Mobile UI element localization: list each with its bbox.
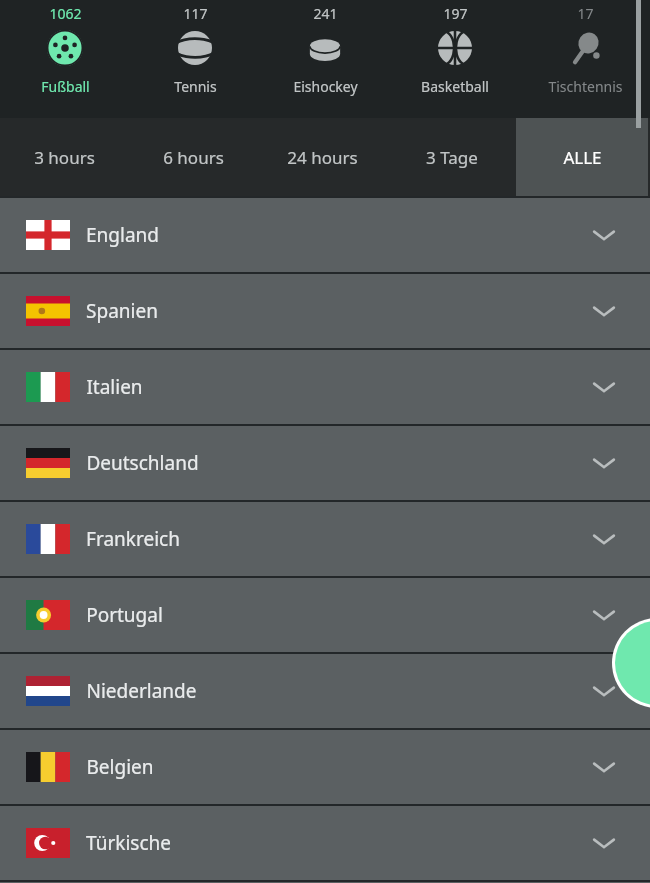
staticText: Tennis xyxy=(174,77,217,96)
staticText: Niederlande xyxy=(86,678,197,704)
other: Expand xyxy=(580,363,628,411)
button[interactable]: 117 xyxy=(130,0,260,118)
staticText: Deutschland xyxy=(86,450,199,476)
button[interactable]: ALLE xyxy=(516,118,648,196)
staticText: 3 hours xyxy=(34,146,95,169)
staticText: ALLE xyxy=(563,146,602,169)
button[interactable]: 1062 xyxy=(0,0,130,118)
staticText: 1062 xyxy=(49,4,82,23)
staticText: 6 hours xyxy=(163,146,224,169)
staticText: 241 xyxy=(313,4,338,23)
staticText: England xyxy=(86,222,159,248)
staticText: Tischtennis xyxy=(548,77,623,96)
button[interactable]: Add xyxy=(615,621,650,705)
staticText: Portugal xyxy=(86,602,163,628)
button[interactable]: Spanien xyxy=(0,274,650,348)
staticText: Eishockey xyxy=(293,77,358,96)
button[interactable]: Belgien xyxy=(0,730,650,804)
staticText: 17 xyxy=(577,4,594,23)
staticText: 3 Tage xyxy=(426,146,478,169)
other: Expand xyxy=(580,667,628,715)
button[interactable]: 3 hours xyxy=(0,118,129,196)
button[interactable]: Frankreich xyxy=(0,502,650,576)
other: Expand xyxy=(580,743,628,791)
other: Expand xyxy=(580,287,628,335)
button[interactable]: Portugal xyxy=(0,578,650,652)
button[interactable]: Niederlande xyxy=(0,654,650,728)
staticText: Belgien xyxy=(86,754,154,780)
button[interactable]: 241 xyxy=(260,0,390,118)
staticText: Italien xyxy=(86,374,143,400)
button[interactable]: 3 Tage xyxy=(387,118,516,196)
staticText: Spanien xyxy=(86,298,158,324)
button[interactable]: 197 xyxy=(390,0,520,118)
button[interactable]: Italien xyxy=(0,350,650,424)
button[interactable]: Deutschland xyxy=(0,426,650,500)
other: Expand xyxy=(580,211,628,259)
other: Expand xyxy=(580,515,628,563)
button[interactable]: England xyxy=(0,198,650,272)
staticText: 117 xyxy=(183,4,208,23)
other: Expand xyxy=(580,819,628,867)
button[interactable]: 24 hours xyxy=(258,118,387,196)
button[interactable]: Türkische xyxy=(0,806,650,880)
button[interactable]: 17 xyxy=(520,0,650,118)
button[interactable]: 6 hours xyxy=(129,118,258,196)
staticText: 197 xyxy=(443,4,468,23)
staticText: 24 hours xyxy=(287,146,358,169)
other: Expand xyxy=(580,439,628,487)
staticText: Frankreich xyxy=(86,526,180,552)
staticText: Fußball xyxy=(41,77,90,96)
staticText: Basketball xyxy=(421,77,489,96)
other: Expand xyxy=(580,591,628,639)
staticText: Türkische xyxy=(86,830,171,856)
